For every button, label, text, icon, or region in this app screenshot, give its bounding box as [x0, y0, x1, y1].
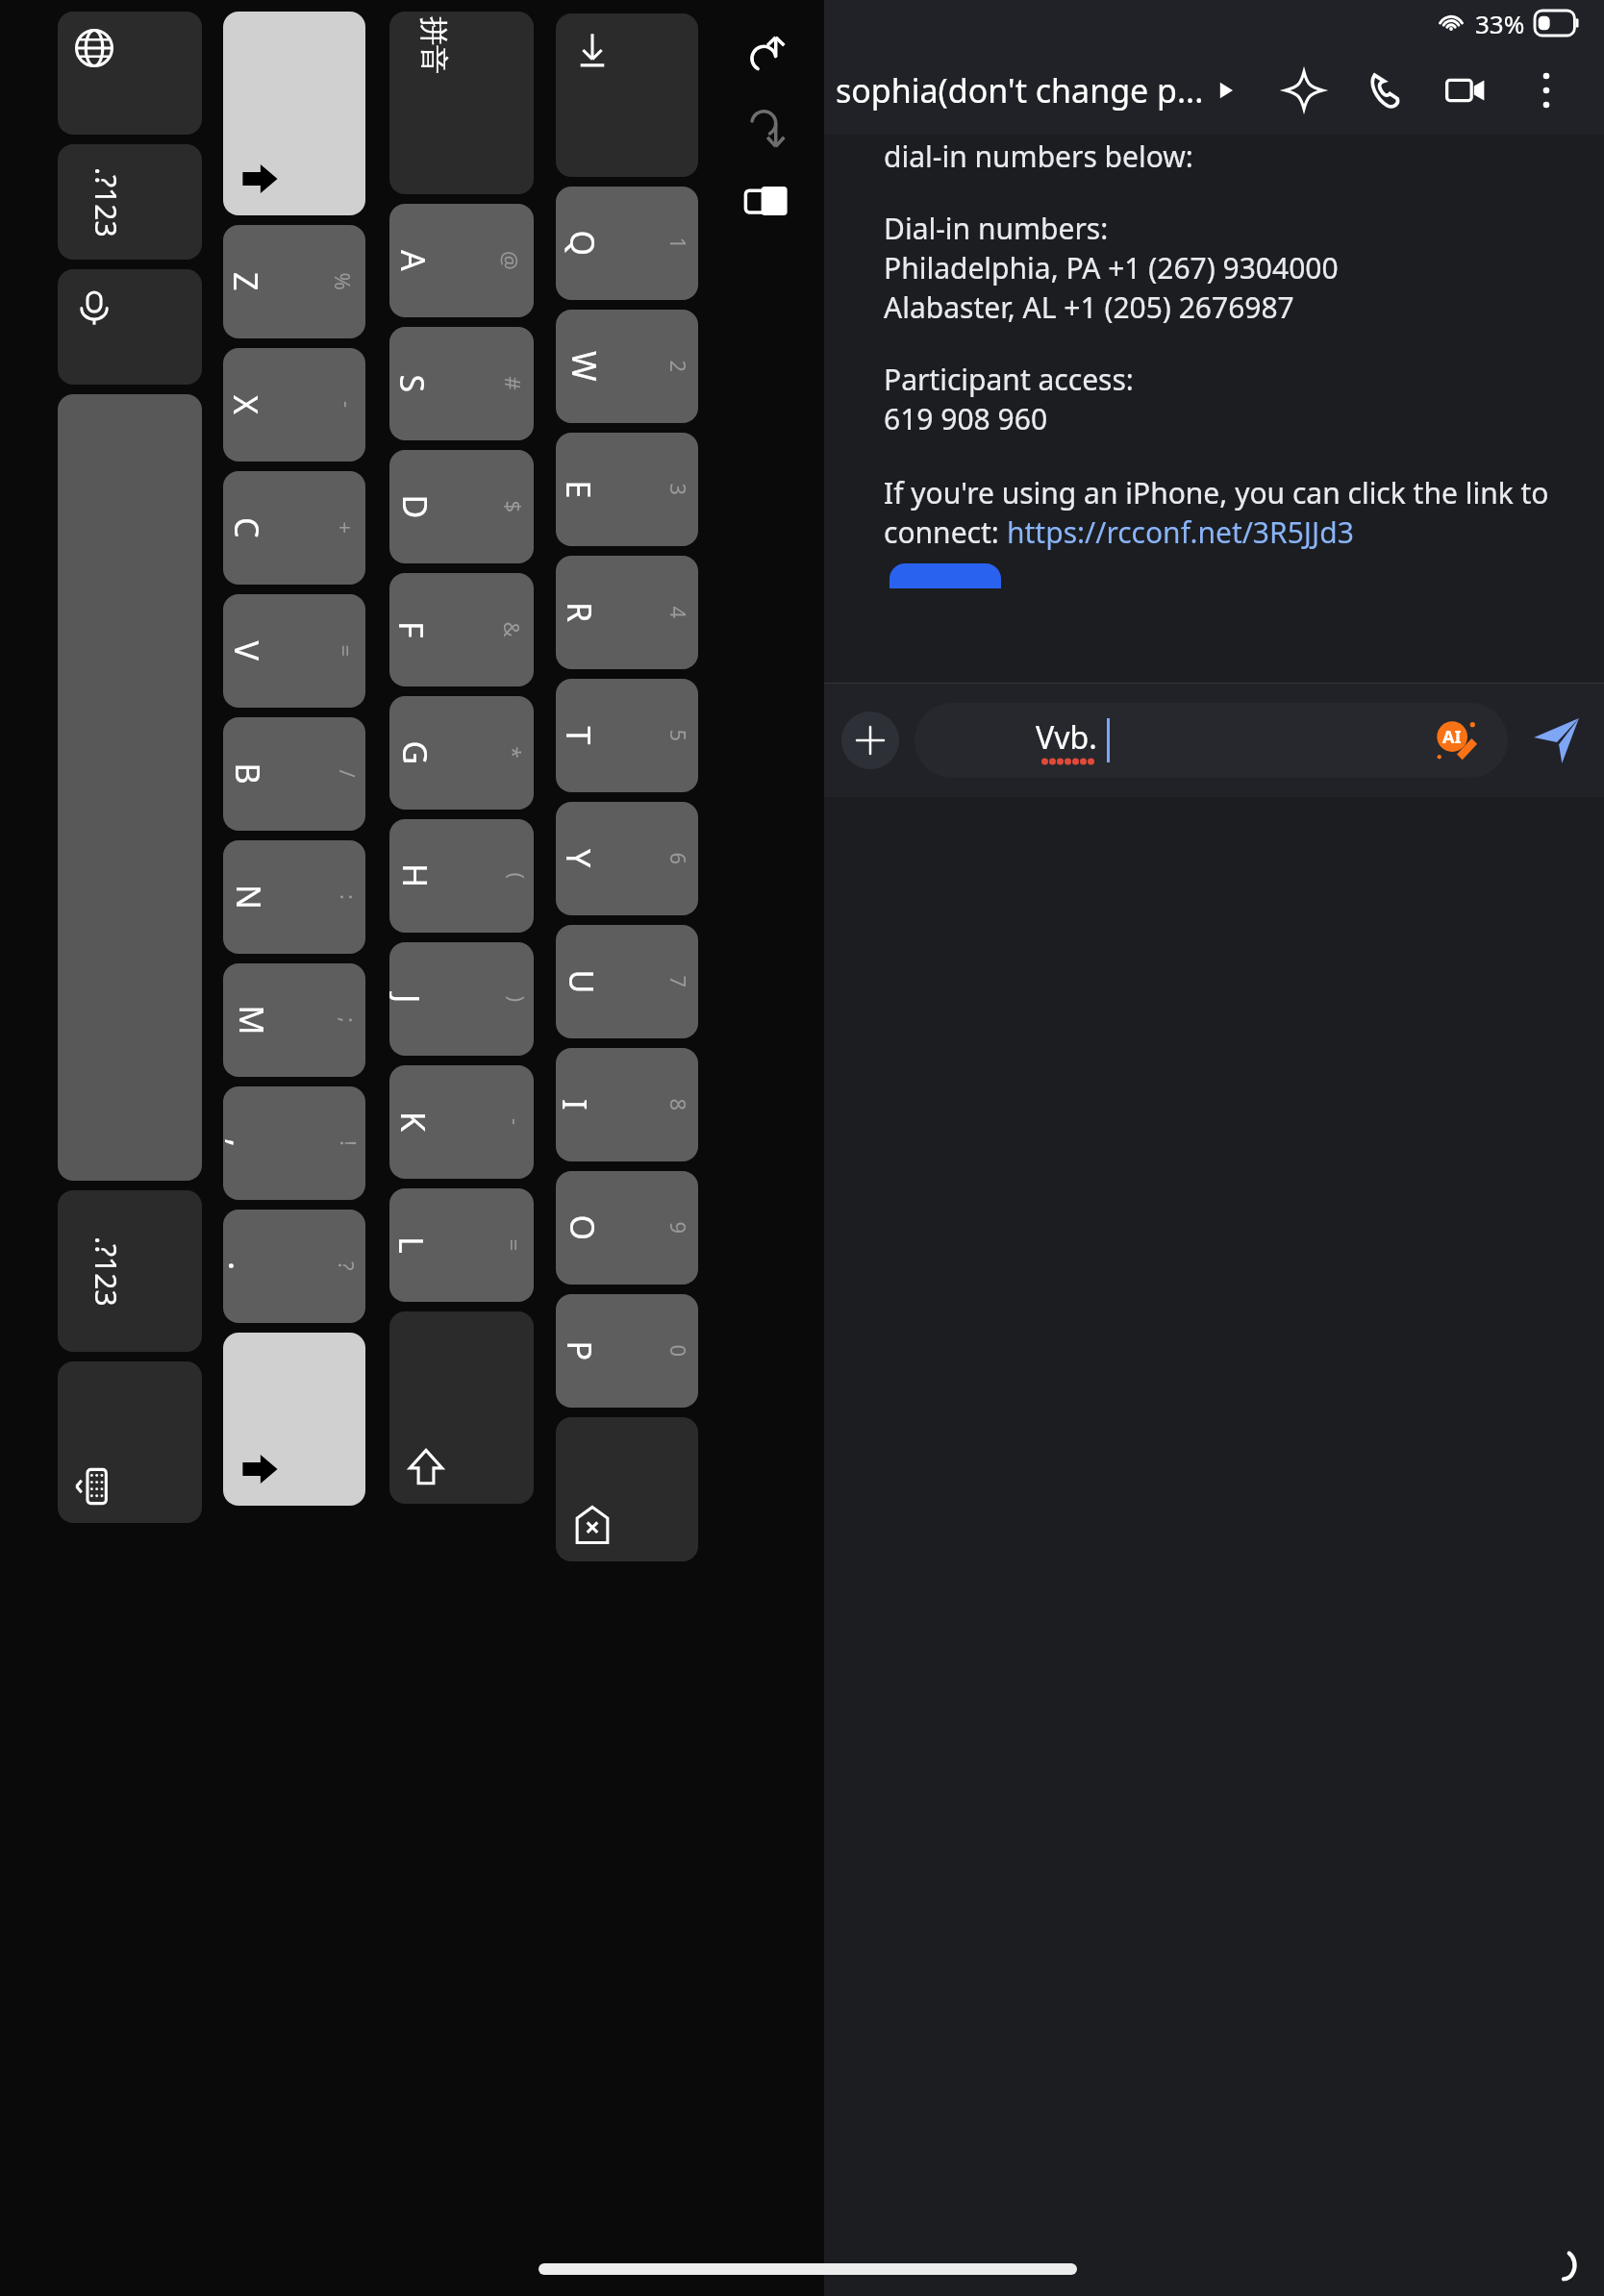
staticText: = [500, 1239, 528, 1251]
staticText: M [229, 1005, 274, 1035]
button[interactable]: del [556, 1417, 698, 1561]
staticText: V [225, 641, 269, 661]
button[interactable]: O [556, 1171, 698, 1285]
staticText: 8 [664, 1098, 693, 1111]
staticText: # [499, 376, 527, 391]
button[interactable]: mic [58, 269, 202, 385]
staticText: AI [1442, 725, 1462, 749]
staticText: $ [500, 500, 528, 513]
staticText: L [389, 1236, 434, 1254]
button[interactable]: AI assist [1433, 717, 1479, 763]
staticText: 33% [1475, 7, 1525, 40]
button[interactable]: L [389, 1188, 534, 1302]
button[interactable]: K [389, 1065, 534, 1179]
button[interactable]: T [556, 679, 698, 792]
staticText: sophia(don't change p... [836, 68, 1204, 112]
button[interactable]: Call [1344, 50, 1425, 131]
button[interactable]: Video call [1425, 50, 1506, 131]
button[interactable]: split [740, 175, 792, 227]
button[interactable]: I [556, 1048, 698, 1161]
button[interactable]: , [223, 1086, 365, 1200]
staticText: U [559, 970, 603, 994]
button[interactable]: F [389, 573, 534, 686]
button[interactable]: Attach [841, 711, 899, 769]
button[interactable]: pinyin [389, 12, 534, 194]
staticText: D [393, 495, 437, 519]
staticText: + [331, 522, 360, 534]
button[interactable]: B [223, 717, 365, 831]
staticText: 2 [664, 360, 693, 373]
staticText: .?123 [87, 167, 126, 237]
staticText: 9 [664, 1222, 693, 1234]
button[interactable]: https://rcconf.net/3R5JJd3 [1007, 512, 1354, 552]
button[interactable]: S [389, 327, 534, 440]
staticText: / [333, 770, 362, 778]
staticText: J [389, 994, 430, 1004]
staticText: * [500, 747, 528, 759]
staticText: connect: [884, 512, 1007, 552]
staticText: @ [496, 251, 525, 270]
staticText: If you're using an iPhone, you can click… [884, 473, 1549, 512]
button[interactable]: D [389, 450, 534, 563]
button[interactable]: kbdDown [556, 13, 698, 177]
staticText: O [560, 1215, 604, 1241]
button[interactable]: J [389, 942, 534, 1056]
button[interactable]: Send [1525, 710, 1587, 771]
button[interactable]: redo [740, 102, 792, 154]
button[interactable]: X [223, 348, 365, 462]
other: Do not disturb [1546, 2248, 1581, 2283]
button[interactable]: C [223, 471, 365, 585]
button[interactable]: U [556, 925, 698, 1038]
staticText: H [393, 863, 438, 888]
button[interactable]: R [556, 556, 698, 669]
staticText: ; [335, 1017, 363, 1023]
button[interactable]: Vvb. [915, 703, 1508, 778]
staticText: , [223, 1138, 263, 1148]
staticText: Alabaster, AL +1 (205) 2676987 [884, 287, 1294, 327]
staticText: G [393, 741, 437, 765]
button[interactable]: Y [556, 802, 698, 915]
button[interactable]: W [556, 310, 698, 423]
button[interactable]: M [223, 963, 365, 1077]
staticText: I [556, 1099, 597, 1111]
staticText: Vvb. [1036, 716, 1097, 759]
staticText: Philadelphia, PA +1 (267) 9304000 [884, 248, 1339, 287]
button[interactable] [58, 394, 202, 1181]
button[interactable]: . [223, 1210, 365, 1323]
staticText: : [335, 894, 363, 900]
button[interactable]: sophia(don't change p... [836, 68, 1264, 112]
button[interactable]: Q [556, 187, 698, 300]
button[interactable]: G [389, 696, 534, 810]
button[interactable]: shift [389, 1311, 534, 1504]
staticText: . [223, 1261, 263, 1271]
staticText: .?123 [87, 1236, 126, 1307]
button[interactable]: undo [740, 29, 792, 81]
button[interactable]: A [389, 204, 534, 317]
staticText: Participant access: [884, 360, 1134, 399]
staticText: S [390, 374, 434, 393]
staticText: 4 [664, 606, 693, 619]
staticText: K [391, 1111, 436, 1133]
staticText: 1 [664, 237, 693, 250]
button[interactable]: arrowR [223, 12, 365, 215]
button[interactable]: .?123 [58, 1190, 202, 1352]
button[interactable]: globe [58, 12, 202, 135]
button[interactable]: N [223, 840, 365, 954]
button[interactable]: Assistant [1264, 50, 1344, 131]
staticText: % [328, 273, 357, 291]
staticText: C [225, 517, 269, 538]
button[interactable]: More options [1506, 50, 1587, 131]
staticText: W [563, 351, 607, 382]
staticText: ? [333, 1261, 362, 1271]
button[interactable]: V [223, 594, 365, 708]
button[interactable]: hide [58, 1361, 202, 1523]
button[interactable]: .?123 [58, 144, 202, 260]
staticText: ) [502, 996, 531, 1002]
staticText: 3 [664, 483, 693, 496]
button[interactable]: P [556, 1294, 698, 1408]
button[interactable]: Z [223, 225, 365, 338]
button[interactable]: H [389, 819, 534, 933]
button[interactable]: arrowR [223, 1333, 365, 1506]
button[interactable]: E [556, 433, 698, 546]
staticText: P [557, 1341, 601, 1361]
